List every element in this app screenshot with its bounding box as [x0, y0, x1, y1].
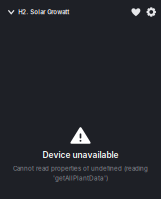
staticText: H2. Solar Growatt [18, 8, 69, 16]
button[interactable]: Settings [142, 3, 160, 21]
staticText: 'getAllPlantData') [53, 174, 108, 182]
button[interactable]: H2. Solar Growatt [0, 4, 75, 20]
button[interactable]: Favourite [125, 4, 142, 20]
staticText: Cannot read properties of undefined (rea… [13, 165, 148, 172]
staticText: Device unavailable [42, 150, 118, 160]
